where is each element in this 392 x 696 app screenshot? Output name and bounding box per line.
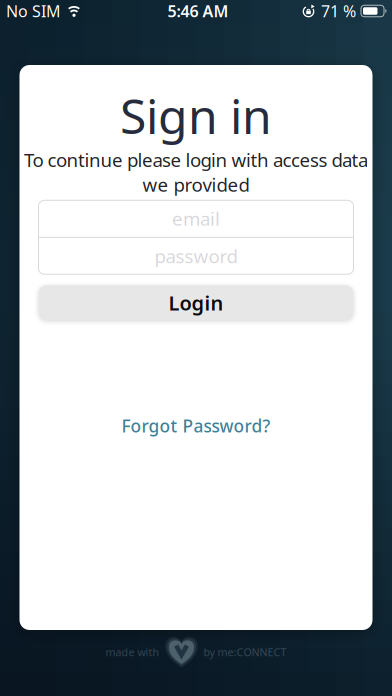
button[interactable]: email (38, 200, 353, 237)
staticText: Sign in (120, 83, 272, 147)
staticText: Forgot Password? (121, 414, 270, 437)
staticText: by me:CONNECT (203, 645, 286, 659)
staticText: No SIM (6, 0, 61, 22)
staticText: To continue please login with access dat… (24, 147, 368, 172)
staticText: email (172, 206, 220, 231)
staticText: Login (168, 289, 223, 316)
staticText: 5:46 AM (167, 0, 228, 22)
staticText: made with (105, 645, 159, 659)
button[interactable]: Login (38, 285, 353, 320)
staticText: 71 % (321, 0, 356, 22)
button[interactable]: Forgot Password? (121, 414, 270, 437)
staticText: we provided (142, 172, 249, 197)
staticText: password (154, 244, 237, 268)
button[interactable]: password (38, 238, 353, 274)
